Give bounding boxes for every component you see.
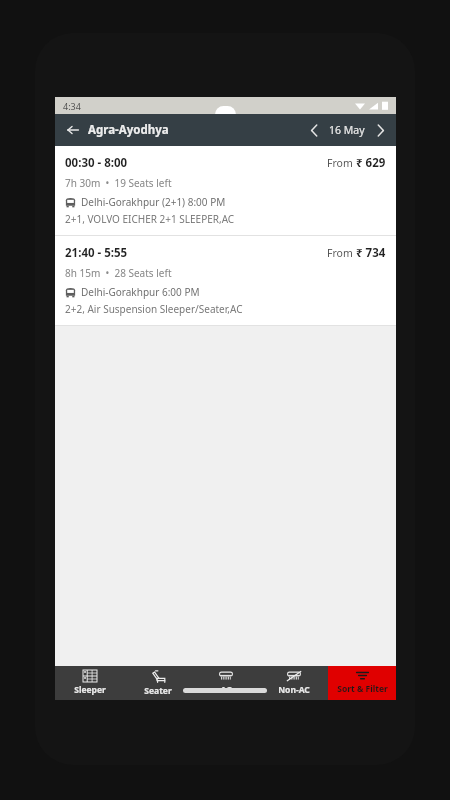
button[interactable]: Seater xyxy=(124,666,192,700)
staticText: Delhi-Gorakhpur 6:00 PM xyxy=(81,285,200,299)
staticText: Agra-Ayodhya xyxy=(88,122,169,138)
other: Seater xyxy=(151,670,166,683)
button[interactable]: Sleeper xyxy=(55,666,124,700)
staticText: Sleeper xyxy=(74,684,106,696)
button[interactable]: Previous day xyxy=(304,120,324,140)
staticText: 4:34 xyxy=(63,100,81,112)
other: Sort and Filter xyxy=(356,671,369,681)
staticText: AC xyxy=(220,684,232,696)
staticText: Delhi-Gorakhpur (2+1) 8:00 PM xyxy=(81,195,226,209)
staticText: ₹ 734 xyxy=(356,245,386,261)
staticText: 2+1, VOLVO EICHER 2+1 SLEEPER,AC xyxy=(65,212,235,226)
staticText: 8h 15m • 28 Seats left xyxy=(65,266,172,280)
button[interactable]: 21:40 - 5:55 xyxy=(55,236,396,325)
button[interactable]: Back xyxy=(55,118,177,142)
staticText: ₹ 629 xyxy=(356,155,386,171)
button[interactable]: Next day xyxy=(370,120,390,140)
button[interactable]: AC xyxy=(192,666,260,700)
staticText: Non-AC xyxy=(278,684,310,696)
button[interactable]: Non-AC xyxy=(260,666,328,700)
other: AC xyxy=(218,671,234,682)
other: Back xyxy=(67,124,79,136)
other: Sleeper xyxy=(83,670,97,682)
staticText: Seater xyxy=(144,685,172,697)
staticText: 2+2, Air Suspension Sleeper/Seater,AC xyxy=(65,302,243,316)
button[interactable]: 00:30 - 8:00 xyxy=(55,146,396,235)
staticText: From xyxy=(327,156,356,170)
staticText: 00:30 - 8:00 xyxy=(65,155,128,171)
staticText: Sort & Filter xyxy=(337,683,388,695)
staticText: 7h 30m • 19 Seats left xyxy=(65,176,172,190)
staticText: 21:40 - 5:55 xyxy=(65,245,128,261)
staticText: From xyxy=(327,246,356,260)
button[interactable]: Sort and Filter xyxy=(328,666,396,700)
other: Non-AC xyxy=(286,671,302,682)
button[interactable]: 16 May xyxy=(324,123,370,137)
